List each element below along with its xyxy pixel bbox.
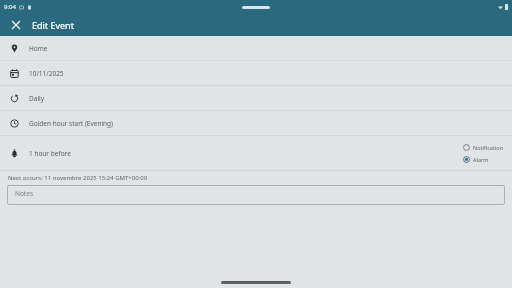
button[interactable]: Close	[8, 17, 24, 33]
staticText: 9:04	[4, 3, 16, 11]
other: Reminder	[10, 149, 19, 158]
other: Time	[10, 119, 19, 128]
staticText: Notification	[473, 144, 504, 151]
staticText: Alarm	[473, 156, 489, 163]
button[interactable]: Time	[0, 111, 512, 135]
button[interactable]: Repeat	[0, 86, 512, 110]
button[interactable]: Alarm	[463, 156, 489, 163]
staticText: Golden hour start (Evening)	[29, 119, 114, 128]
button[interactable]: Location	[0, 36, 512, 60]
button[interactable]: Date	[0, 61, 512, 85]
button[interactable]: Notes	[7, 185, 505, 205]
button[interactable]: Notification	[463, 144, 504, 151]
other: Repeat	[10, 94, 19, 103]
staticText: Next occurs: 11 novembre 2025 15:24 GMT+…	[8, 174, 148, 182]
other: Location	[10, 44, 19, 53]
staticText: Notes	[15, 189, 33, 198]
button[interactable]: Reminder	[0, 136, 512, 170]
staticText: Daily	[29, 94, 45, 103]
staticText: Home	[29, 44, 48, 53]
other: Date	[10, 69, 19, 78]
staticText: Edit Event	[32, 19, 74, 31]
staticText: 10/11/2025	[29, 69, 64, 78]
staticText: 1 hour before	[29, 149, 71, 158]
